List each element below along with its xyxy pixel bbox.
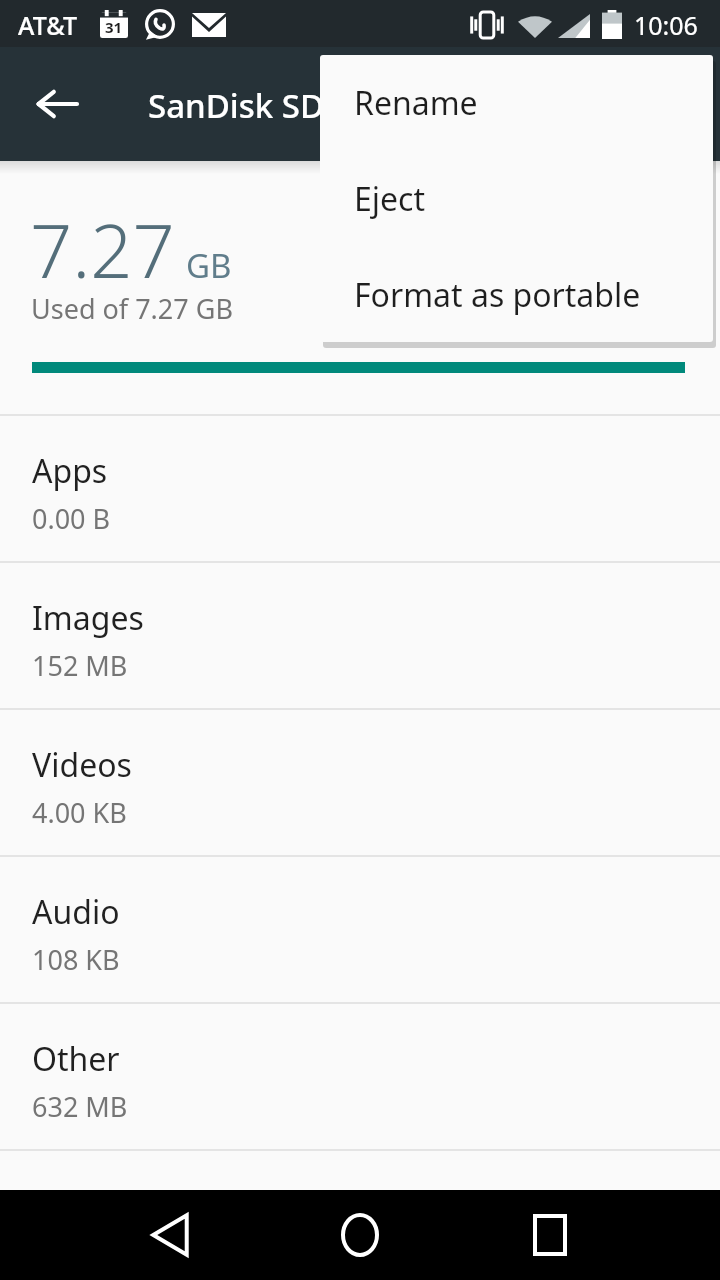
staticText: Videos [32, 743, 132, 787]
button[interactable]: Back [122, 1190, 218, 1280]
staticText: 31 [105, 17, 123, 37]
staticText: Other [32, 1037, 120, 1081]
staticText: Format as portable [354, 273, 641, 317]
staticText: Apps [32, 449, 108, 493]
staticText: 0.00 B [32, 500, 111, 537]
button[interactable]: Other [0, 1004, 720, 1149]
staticText: Rename [354, 81, 478, 125]
staticText: Images [32, 596, 144, 640]
staticText: Used of 7.27 GB [31, 290, 233, 327]
button[interactable]: Format as portable [320, 247, 713, 342]
staticText: SanDisk SD card [148, 83, 402, 128]
button[interactable]: Apps [0, 416, 720, 561]
button[interactable]: Recent apps [502, 1190, 598, 1280]
staticText: 632 MB [32, 1088, 128, 1125]
staticText: AT&T [18, 8, 78, 42]
staticText: 108 KB [32, 941, 120, 978]
staticText: Eject [354, 177, 426, 221]
button[interactable]: Rename [320, 55, 713, 151]
staticText: 152 MB [32, 647, 128, 684]
button[interactable]: Home [312, 1190, 408, 1280]
button[interactable]: Navigate up [17, 64, 97, 144]
button[interactable]: Audio [0, 857, 720, 1002]
staticText: 10:06 [634, 8, 698, 42]
staticText: GB [186, 243, 232, 288]
button[interactable]: Images [0, 563, 720, 708]
button[interactable]: Videos [0, 710, 720, 855]
staticText: 7.27 [30, 199, 175, 300]
staticText: Audio [32, 890, 120, 934]
staticText: 4.00 KB [32, 794, 127, 831]
button[interactable]: Eject [320, 151, 713, 247]
